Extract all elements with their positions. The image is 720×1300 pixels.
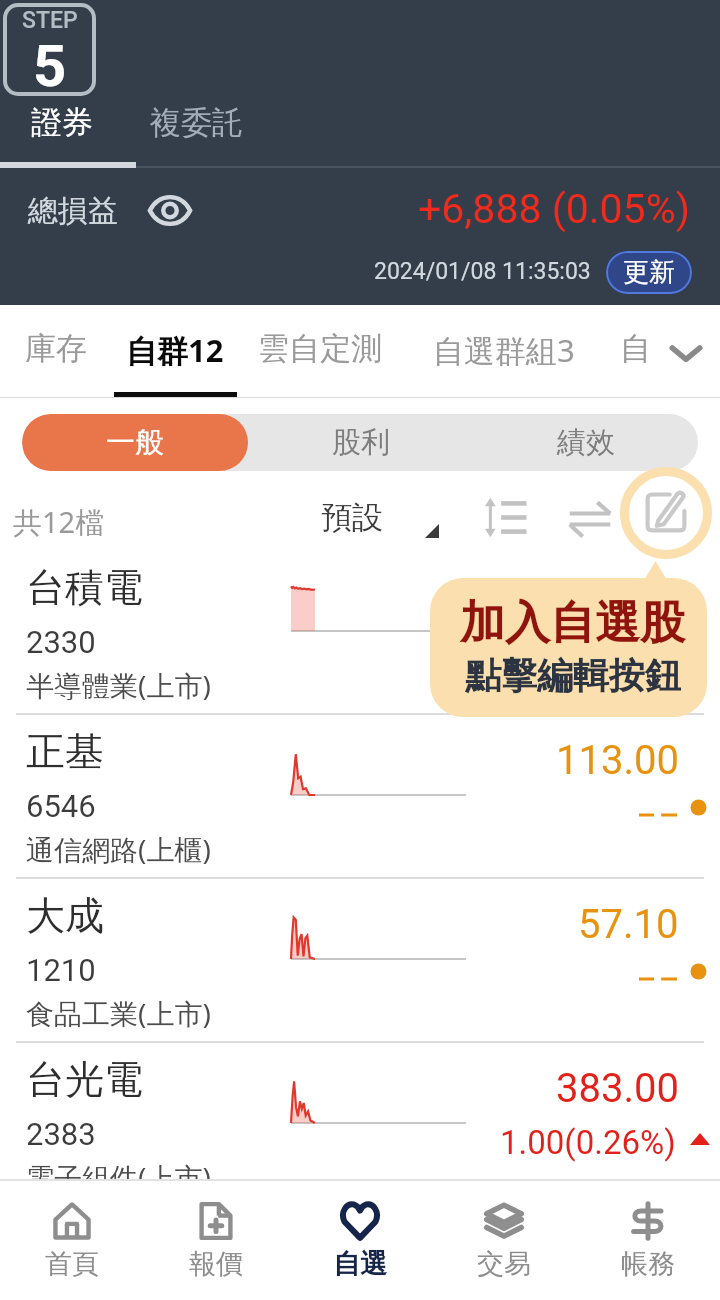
staticText: 報價 bbox=[189, 1247, 243, 1281]
button[interactable]: 股利 bbox=[248, 414, 473, 471]
staticText: 點擊編輯按鈕 bbox=[465, 653, 681, 698]
staticText: 複委託 bbox=[150, 103, 243, 142]
button[interactable]: 預設 bbox=[310, 492, 450, 543]
staticText: 自選群組3 bbox=[433, 329, 575, 371]
button[interactable]: 首頁 bbox=[0, 1181, 144, 1300]
staticText: 雲自定測 bbox=[258, 329, 382, 368]
staticText: 383.00 bbox=[556, 1065, 679, 1112]
button[interactable]: 帳務 bbox=[576, 1181, 720, 1300]
button[interactable]: Edit bbox=[643, 489, 689, 535]
button[interactable]: 台光電 bbox=[0, 1041, 720, 1205]
button[interactable]: Swap columns bbox=[567, 496, 613, 542]
button[interactable]: 庫存 bbox=[14, 321, 98, 376]
button[interactable]: 交易 bbox=[432, 1181, 576, 1300]
staticText: 2330 bbox=[26, 624, 96, 660]
staticText: 證券 bbox=[31, 103, 93, 142]
staticText: 半導體業(上市) bbox=[26, 666, 211, 704]
staticText: 2024/01/08 11:35:03 bbox=[374, 258, 591, 285]
staticText: 自選 bbox=[333, 1247, 387, 1281]
staticText: 1210 bbox=[26, 952, 96, 988]
staticText: 股利 bbox=[332, 424, 390, 461]
staticText: 57.10 bbox=[578, 901, 679, 948]
staticText: 更新 bbox=[623, 256, 675, 289]
staticText: 1.00(0.26%) bbox=[500, 1123, 676, 1162]
button[interactable]: Toggle visibility bbox=[143, 188, 197, 232]
staticText: 台積電 bbox=[26, 563, 143, 612]
staticText: 正基 bbox=[26, 727, 104, 776]
button[interactable]: 複委託 bbox=[139, 97, 254, 148]
staticText: 食品工業(上市) bbox=[26, 994, 211, 1032]
staticText: 績效 bbox=[557, 424, 615, 461]
staticText: 大成 bbox=[26, 891, 104, 940]
button[interactable]: 自選 bbox=[288, 1181, 432, 1300]
staticText: +6,888 (0.05%) bbox=[418, 185, 690, 233]
staticText: 6546 bbox=[26, 788, 96, 824]
staticText: 預設 bbox=[321, 498, 383, 537]
staticText: 庫存 bbox=[25, 329, 87, 368]
staticText: 2383 bbox=[26, 1116, 96, 1152]
button[interactable]: 雲自定測 bbox=[247, 321, 393, 376]
staticText: 總損益 bbox=[28, 192, 118, 230]
staticText: 一般 bbox=[106, 424, 164, 461]
staticText: 自群12 bbox=[126, 329, 224, 371]
staticText: 加入自選股 bbox=[460, 595, 685, 652]
staticText: 首頁 bbox=[45, 1247, 99, 1281]
staticText: 113.00 bbox=[556, 737, 679, 784]
staticText: 交易 bbox=[477, 1247, 531, 1281]
staticText: 自 bbox=[620, 329, 651, 368]
button[interactable]: 大成 bbox=[0, 877, 720, 1041]
button[interactable]: 台積電 bbox=[0, 549, 720, 713]
button[interactable]: 證券 bbox=[20, 97, 104, 148]
staticText: 5 bbox=[33, 32, 67, 100]
staticText: STEP bbox=[22, 7, 78, 34]
button[interactable]: 自群12 bbox=[115, 321, 235, 379]
button[interactable]: 一般 bbox=[22, 414, 248, 471]
button[interactable]: 報價 bbox=[144, 1181, 288, 1300]
staticText: 台光電 bbox=[26, 1055, 143, 1104]
button[interactable]: Sort bbox=[480, 494, 527, 541]
staticText: 電子組件(上市) bbox=[26, 1158, 211, 1196]
staticText: 帳務 bbox=[621, 1247, 675, 1281]
button[interactable]: More groups bbox=[663, 330, 709, 376]
button[interactable]: 正基 bbox=[0, 713, 720, 877]
button[interactable]: 自 bbox=[609, 321, 662, 376]
button[interactable]: 自選群組3 bbox=[422, 321, 586, 379]
button[interactable]: 更新 bbox=[606, 251, 692, 294]
staticText: 通信網路(上櫃) bbox=[26, 830, 211, 868]
button[interactable]: 績效 bbox=[473, 414, 698, 471]
staticText: 共12檔 bbox=[13, 502, 105, 542]
